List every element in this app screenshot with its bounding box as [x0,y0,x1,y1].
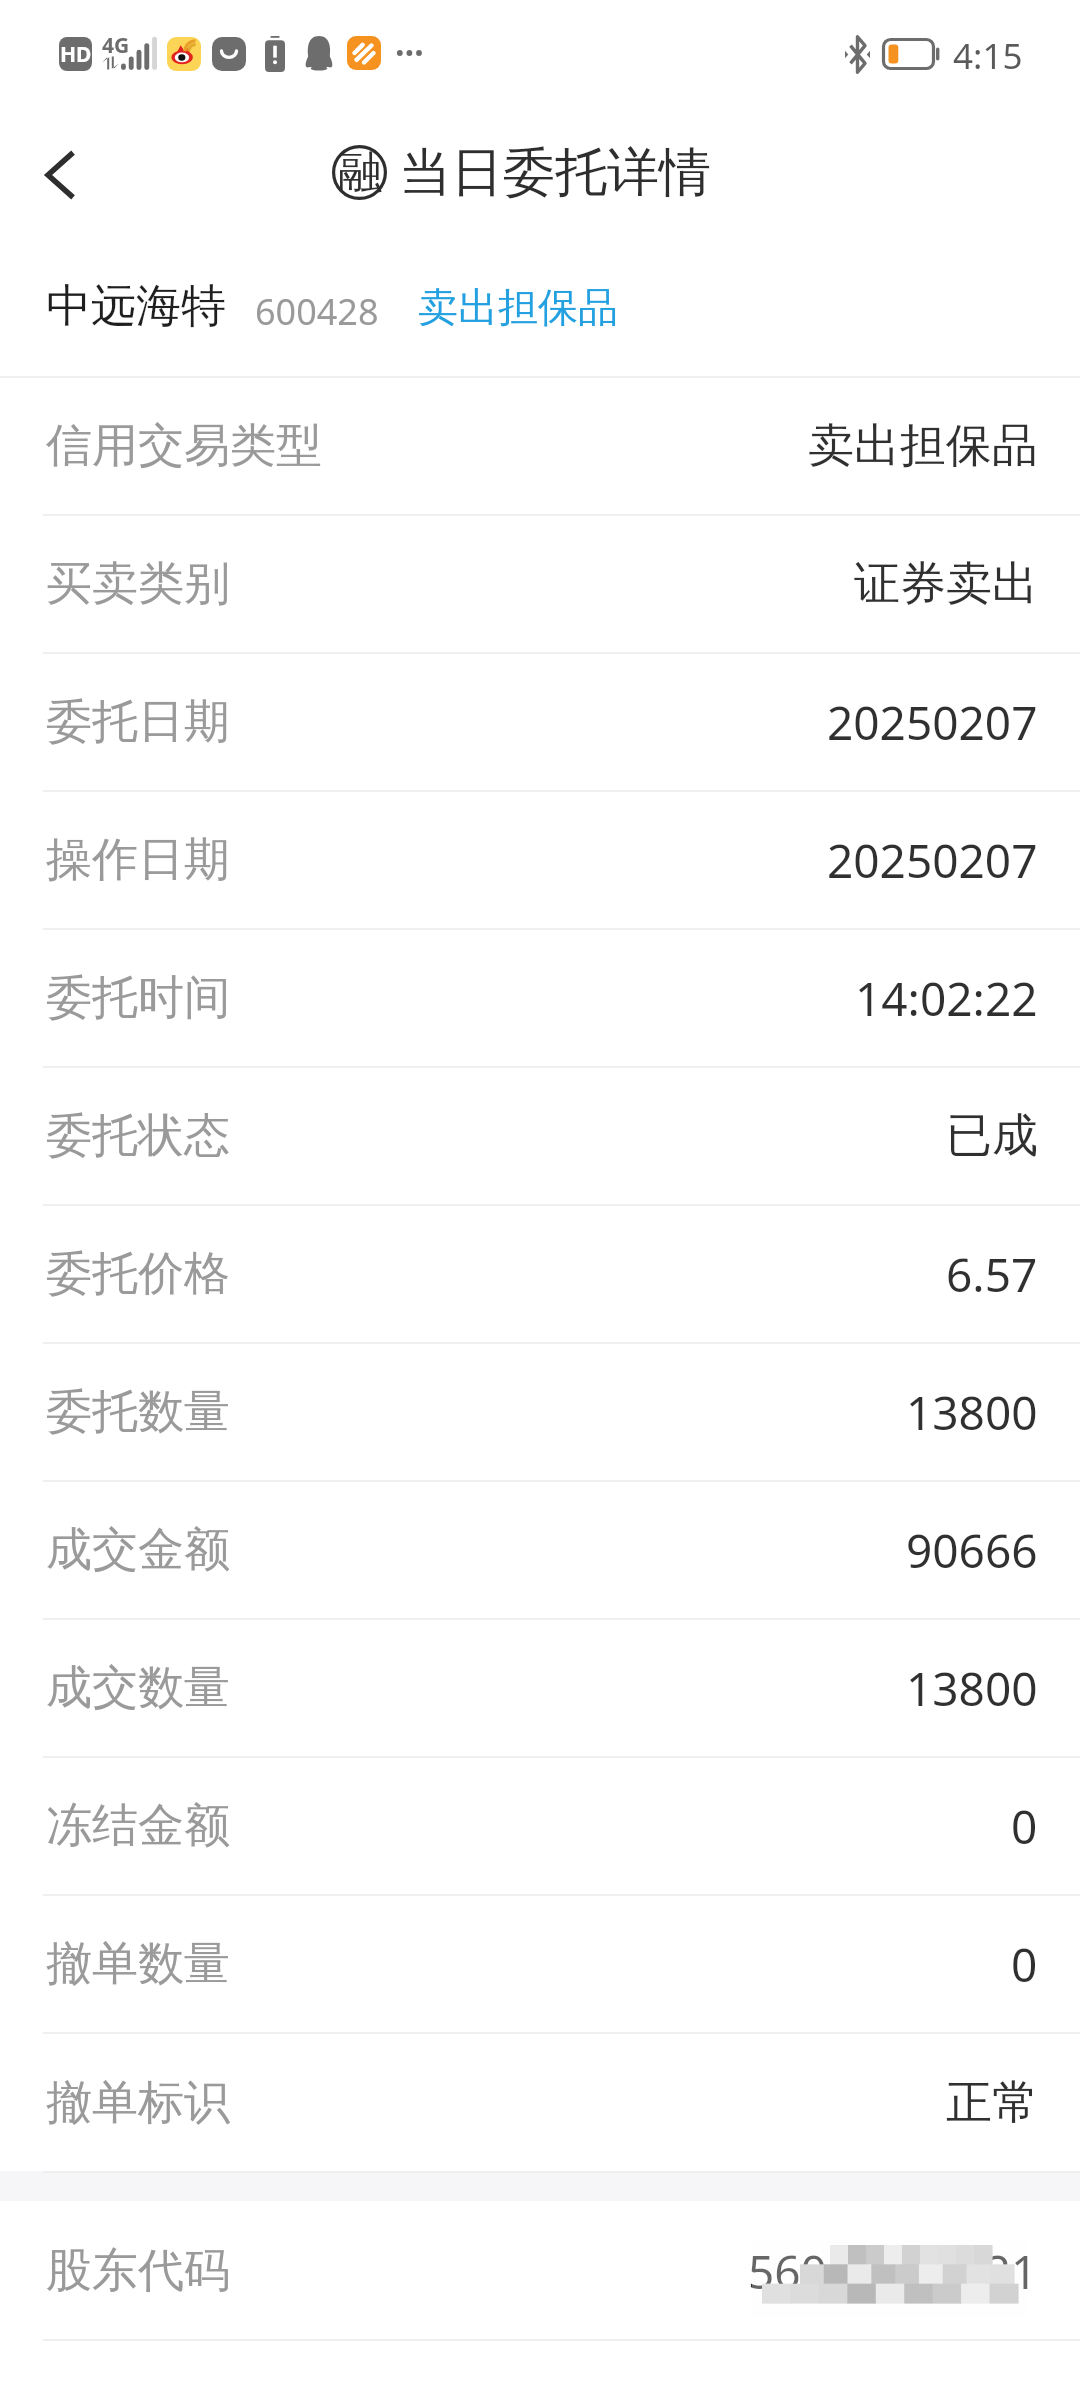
staticText: 委托时间 [46,969,230,1027]
button[interactable]: 委托日期 [0,652,1080,790]
staticText: 20250207 [827,829,1038,892]
staticText: 56058108821 [748,2240,1038,2303]
staticText: 当日委托详情 [399,140,711,206]
button[interactable]: 委托价格 [0,1204,1080,1342]
staticText: 20250207 [827,691,1038,754]
button[interactable]: 冻结金额 [0,1756,1080,1894]
staticText: 卖出担保品 [808,417,1038,475]
button[interactable]: 买卖类别 [0,514,1080,652]
staticText: 90666 [906,1519,1038,1582]
staticText: 4:15 [953,32,1023,80]
staticText: 4G [102,31,130,60]
staticText: 0 [1011,1933,1038,1996]
staticText: 已成 [946,1107,1038,1165]
button[interactable]: 撤单标识 [0,2032,1080,2171]
staticText: 13800 [906,1657,1038,1720]
staticText: 委托日期 [46,693,230,751]
staticText: 0 [1011,1795,1038,1858]
button[interactable]: 成交金额 [0,1480,1080,1618]
button[interactable]: 信用交易类型 [0,376,1080,514]
staticText: 信用交易类型 [46,417,322,475]
staticText: 撤单数量 [46,1935,230,1993]
staticText: 中远海特 [46,278,226,335]
staticText: 买卖类别 [46,555,230,613]
staticText: 撤单标识 [46,2074,230,2132]
button[interactable]: 委托数量 [0,1342,1080,1480]
button[interactable]: 操作日期 [0,790,1080,928]
button[interactable]: 卖出担保品 [408,262,623,352]
staticText: HD [60,40,92,69]
staticText: 操作日期 [46,831,230,889]
staticText: 委托数量 [46,1383,230,1441]
staticText: 融 [338,145,382,200]
staticText: 股东代码 [46,2242,230,2300]
button[interactable]: Back [0,110,118,240]
staticText: 卖出担保品 [418,282,618,332]
staticText: 成交数量 [46,1659,230,1717]
staticText: 委托价格 [46,1245,230,1303]
staticText: 13800 [906,1381,1038,1444]
staticText: 冻结金额 [46,1797,230,1855]
staticText: 600428 [255,287,379,336]
button[interactable]: 撤单数量 [0,1894,1080,2032]
button[interactable]: 成交数量 [0,1618,1080,1756]
staticText: 正常 [946,2074,1038,2132]
staticText: 成交金额 [46,1521,230,1579]
button[interactable]: 委托状态 [0,1066,1080,1204]
staticText: 证券卖出 [854,555,1038,613]
button[interactable]: 委托时间 [0,928,1080,1066]
staticText: 6.57 [946,1243,1038,1306]
button[interactable]: 股东代码 [0,2201,1080,2339]
staticText: 14:02:22 [855,967,1038,1030]
staticText: 委托状态 [46,1107,230,1165]
